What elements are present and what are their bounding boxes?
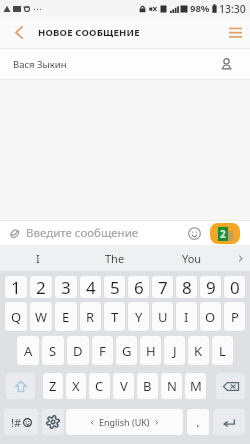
staticText: I <box>184 308 189 326</box>
staticText: English (UK) <box>99 416 150 428</box>
staticText: S <box>49 342 57 360</box>
button[interactable]: Enter <box>213 409 245 435</box>
button[interactable]: R <box>80 302 101 331</box>
button[interactable]: Symbols and emoji <box>4 409 38 435</box>
button[interactable]: 3 <box>55 276 77 298</box>
staticText: E <box>62 308 70 326</box>
staticText: N <box>167 377 177 395</box>
button[interactable]: U <box>152 302 173 331</box>
staticText: K <box>194 342 203 360</box>
button[interactable]: Back <box>0 17 38 48</box>
button[interactable]: D <box>67 336 89 365</box>
staticText: 7 <box>158 276 168 298</box>
button[interactable]: W <box>30 302 52 331</box>
button[interactable]: M <box>185 373 206 399</box>
button[interactable]: Add recipient <box>215 53 237 75</box>
staticText: W <box>35 308 48 326</box>
staticText: V <box>120 377 128 395</box>
staticText: C <box>95 377 104 395</box>
staticText: 1 <box>11 276 21 298</box>
button[interactable]: F <box>92 336 113 365</box>
button[interactable]: English (UK) <box>66 409 183 435</box>
staticText: Вася Зыкин <box>13 58 67 71</box>
button[interactable]: O <box>200 302 221 331</box>
staticText: F <box>99 342 106 360</box>
staticText: !# <box>11 415 22 430</box>
button[interactable]: I <box>176 302 197 331</box>
button[interactable]: The <box>76 245 153 271</box>
staticText: 9 <box>206 276 216 298</box>
button[interactable]: J <box>164 336 185 365</box>
staticText: 8 <box>182 276 192 298</box>
button[interactable]: You <box>153 245 230 271</box>
button[interactable]: 9 <box>200 276 221 298</box>
staticText: U <box>158 308 168 326</box>
button[interactable]: Y <box>128 302 149 331</box>
staticText: Введите сообщение <box>26 225 139 241</box>
staticText: 2 <box>220 227 226 241</box>
button[interactable]: 4 <box>80 276 101 298</box>
staticText: O <box>205 308 216 326</box>
staticText: A <box>24 342 33 360</box>
button[interactable]: Z <box>43 373 63 399</box>
staticText: R <box>86 308 95 326</box>
staticText: You <box>182 251 202 266</box>
staticText: L <box>219 342 226 360</box>
staticText: G <box>122 342 132 360</box>
button[interactable]: N <box>161 373 182 399</box>
button[interactable]: Q <box>5 302 27 331</box>
staticText: X <box>72 377 80 395</box>
button[interactable]: 8 <box>176 276 197 298</box>
button[interactable]: B <box>137 373 158 399</box>
button[interactable]: T <box>104 302 125 331</box>
button[interactable]: E <box>55 302 77 331</box>
staticText: . <box>196 413 200 431</box>
button[interactable]: 7 <box>152 276 173 298</box>
button[interactable]: . <box>187 409 209 435</box>
staticText: Z <box>49 377 57 395</box>
button[interactable]: G <box>116 336 137 365</box>
button[interactable]: P <box>224 302 245 331</box>
staticText: Y <box>135 308 143 326</box>
button[interactable]: Backspace <box>216 373 245 399</box>
button[interactable]: L <box>212 336 233 365</box>
staticText: P <box>231 308 239 326</box>
button[interactable]: A <box>17 336 39 365</box>
button[interactable]: Send message <box>210 223 240 244</box>
staticText: I <box>36 251 40 266</box>
staticText: M <box>190 377 202 395</box>
staticText: 4 <box>86 276 96 298</box>
button[interactable]: C <box>89 373 110 399</box>
button[interactable]: Keyboard settings <box>42 409 64 435</box>
staticText: 5 <box>110 276 120 298</box>
button[interactable]: 0 <box>224 276 245 298</box>
button[interactable]: K <box>188 336 209 365</box>
button[interactable]: S <box>42 336 64 365</box>
staticText: D <box>73 342 83 360</box>
staticText: H <box>146 342 156 360</box>
staticText: T <box>111 308 119 326</box>
button[interactable]: Attach file <box>5 224 23 242</box>
button[interactable]: Shift <box>6 373 35 399</box>
button[interactable]: X <box>66 373 86 399</box>
staticText: The <box>105 251 125 266</box>
button[interactable]: Menu <box>220 17 250 48</box>
staticText: 6 <box>134 276 144 298</box>
button[interactable]: More suggestions <box>230 245 250 271</box>
button[interactable]: I <box>0 245 76 271</box>
button[interactable]: Emoji <box>185 224 203 242</box>
button[interactable]: 6 <box>128 276 149 298</box>
staticText: ⋯ <box>33 4 42 14</box>
staticText: НОВОЕ СООБЩЕНИЕ <box>38 26 140 39</box>
staticText: 0 <box>230 276 240 298</box>
staticText: 3 <box>61 276 71 298</box>
button[interactable]: H <box>140 336 161 365</box>
staticText: J <box>173 342 177 360</box>
button[interactable]: V <box>113 373 134 399</box>
button[interactable]: 1 <box>5 276 27 298</box>
staticText: B <box>143 377 152 395</box>
staticText: Q <box>11 308 22 326</box>
button[interactable]: 2 <box>30 276 52 298</box>
button[interactable]: 5 <box>104 276 125 298</box>
staticText: 2 <box>36 276 46 298</box>
